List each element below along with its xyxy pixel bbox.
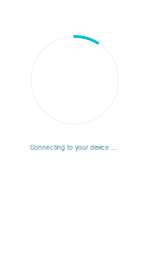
staticText: Connecting to your device ... — [30, 144, 117, 151]
